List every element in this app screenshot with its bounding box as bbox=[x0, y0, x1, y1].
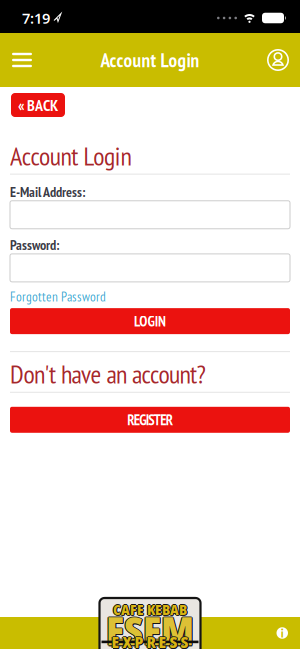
staticText: 7:19 bbox=[22, 8, 50, 28]
staticText: ESEM bbox=[106, 605, 194, 649]
staticText: E X P R E S S bbox=[111, 631, 188, 649]
staticText: CAFE KEBAB bbox=[113, 600, 187, 619]
staticText: E X P R E S S bbox=[111, 630, 188, 649]
staticText: « BACK bbox=[18, 95, 58, 115]
staticText: E X P R E S S bbox=[112, 632, 189, 649]
staticText: Forgotten Password bbox=[10, 288, 106, 305]
staticText: ESEM bbox=[106, 603, 194, 649]
staticText: ESEM bbox=[107, 605, 195, 649]
staticText: CAFE KEBAB bbox=[114, 601, 188, 620]
staticText: CAFE KEBAB bbox=[113, 599, 187, 618]
staticText: ESEM bbox=[105, 604, 193, 649]
button[interactable]: REGISTER bbox=[10, 407, 290, 433]
staticText: Account Login bbox=[10, 139, 131, 173]
staticText: E X P R E S S bbox=[111, 631, 188, 649]
staticText: E-Mail Address: bbox=[10, 183, 86, 201]
staticText: CAFE KEBAB bbox=[113, 601, 187, 620]
staticText: E X P R E S S bbox=[112, 631, 189, 649]
staticText: CAFE KEBAB bbox=[114, 600, 188, 619]
staticText: CAFE KEBAB bbox=[112, 600, 186, 619]
button[interactable]: LOGIN bbox=[10, 308, 290, 334]
staticText: Password: bbox=[10, 236, 60, 254]
button[interactable]: Menu bbox=[0, 43, 32, 77]
button[interactable]: Info bbox=[276, 626, 300, 640]
staticText: ESEM bbox=[106, 604, 194, 649]
staticText: Account Login bbox=[100, 47, 199, 72]
staticText: LOGIN bbox=[134, 312, 166, 331]
staticText: Don't have an account? bbox=[10, 357, 205, 391]
staticText: E X P R E S S bbox=[111, 632, 188, 649]
button[interactable]: Account bbox=[267, 49, 300, 71]
staticText: ESEM bbox=[107, 604, 195, 649]
staticText: i bbox=[281, 626, 284, 640]
button[interactable]: Forgotten Password bbox=[10, 288, 106, 305]
staticText: REGISTER bbox=[127, 410, 173, 429]
button[interactable]: « BACK bbox=[11, 93, 65, 117]
